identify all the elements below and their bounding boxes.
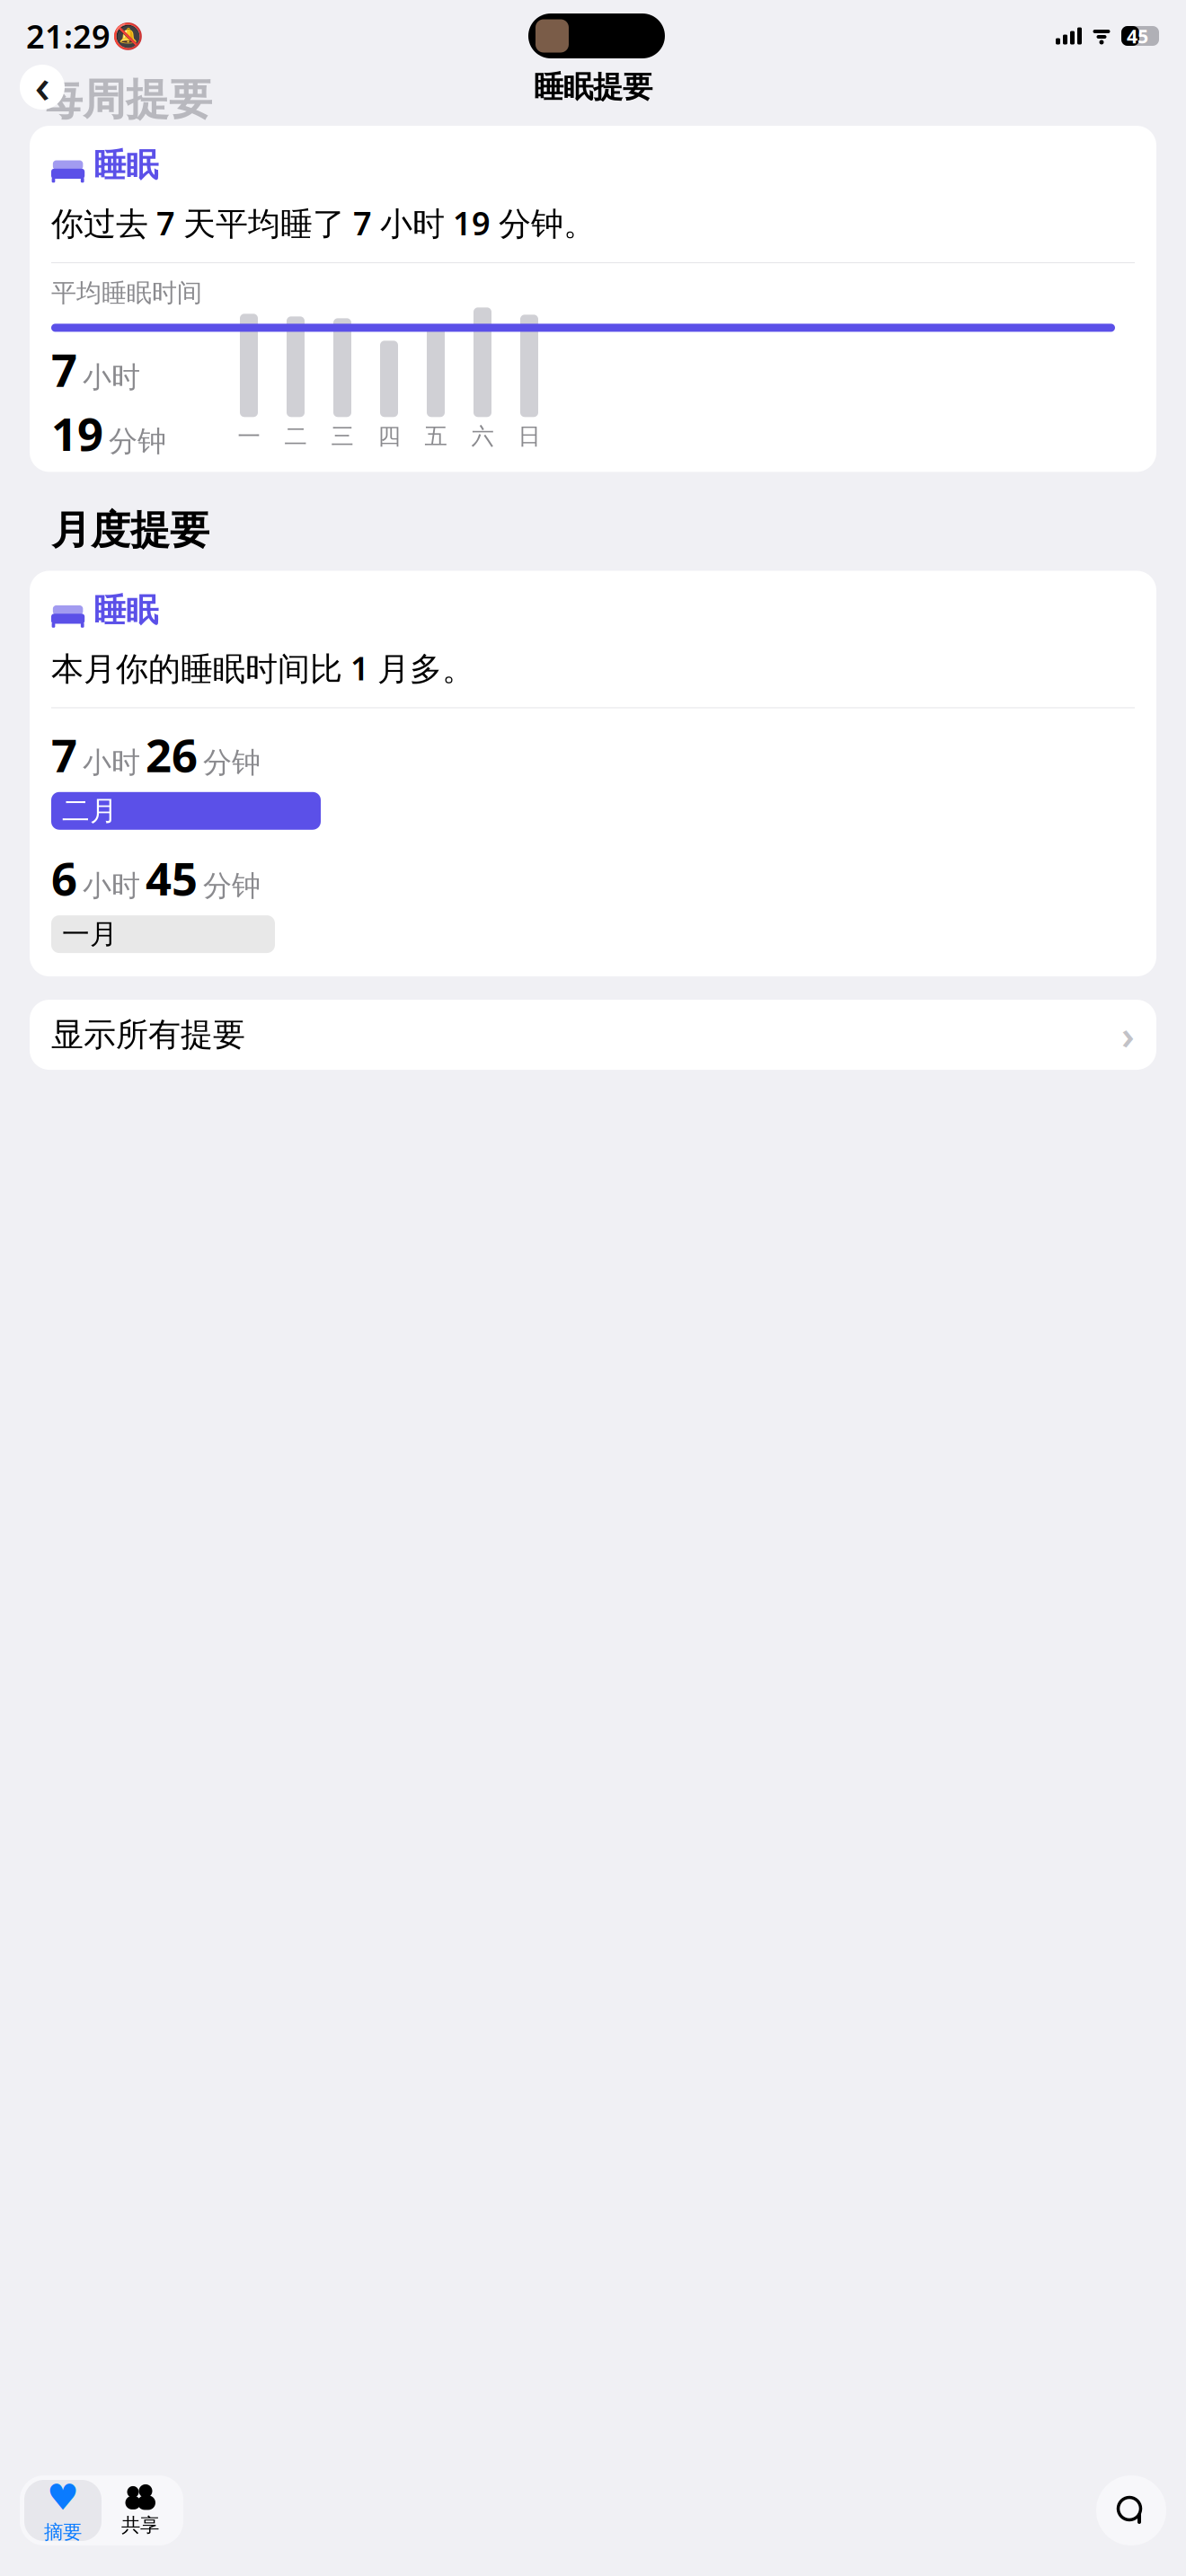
staticText: 每周提要 — [40, 73, 212, 126]
staticText: 小时 — [83, 745, 140, 780]
staticText: 🔕 — [112, 22, 143, 50]
staticText: 7 — [51, 724, 77, 785]
staticText: 日 — [518, 422, 540, 450]
staticText: 三 — [331, 422, 354, 450]
staticText: 6 — [51, 848, 77, 908]
staticText: 一月 — [62, 917, 118, 951]
staticText: 7 — [51, 339, 77, 399]
button[interactable]: 返回 — [20, 55, 65, 119]
staticText: 21:29 — [26, 14, 111, 57]
staticText: 分钟 — [109, 424, 166, 459]
staticText: 睡眠提要 — [534, 69, 652, 105]
button[interactable]: ♥ — [24, 2480, 102, 2541]
staticText: 你过去 7 天平均睡了 7 小时 19 分钟。 — [51, 201, 596, 244]
staticText: 19 — [51, 403, 103, 463]
staticText: › — [1121, 1009, 1135, 1060]
button[interactable]: 显示所有提要 — [30, 1000, 1156, 1070]
staticText: 一 — [238, 422, 260, 450]
staticText: 五 — [425, 422, 447, 450]
staticText: 四 — [378, 422, 400, 450]
staticText: 共享 — [121, 2513, 159, 2537]
staticText: 45 — [1127, 23, 1148, 49]
button[interactable]: 搜索 — [1096, 2475, 1166, 2545]
staticText: 六 — [471, 422, 494, 450]
staticText: 45 — [146, 848, 198, 908]
staticText: 睡眠 — [94, 146, 158, 185]
staticText: 月度提要 — [51, 506, 209, 555]
staticText: 小时 — [83, 868, 140, 904]
staticText: 小时 — [83, 360, 140, 395]
staticText: 二 — [284, 422, 307, 450]
staticText: 分钟 — [203, 868, 261, 904]
button[interactable]: 共享 — [102, 2480, 179, 2541]
staticText: 显示所有提要 — [51, 1015, 245, 1055]
staticText: 摘要 — [44, 2520, 82, 2544]
staticText: ‹ — [35, 53, 50, 116]
staticText: 二月 — [62, 794, 118, 828]
staticText: 26 — [146, 724, 198, 785]
staticText: 本月你的睡眠时间比 1 月多。 — [51, 646, 474, 689]
staticText: ♥ — [47, 2477, 79, 2518]
staticText: 平均睡眠时间 — [51, 278, 202, 308]
staticText: 睡眠 — [94, 591, 158, 630]
staticText: 分钟 — [203, 745, 261, 780]
